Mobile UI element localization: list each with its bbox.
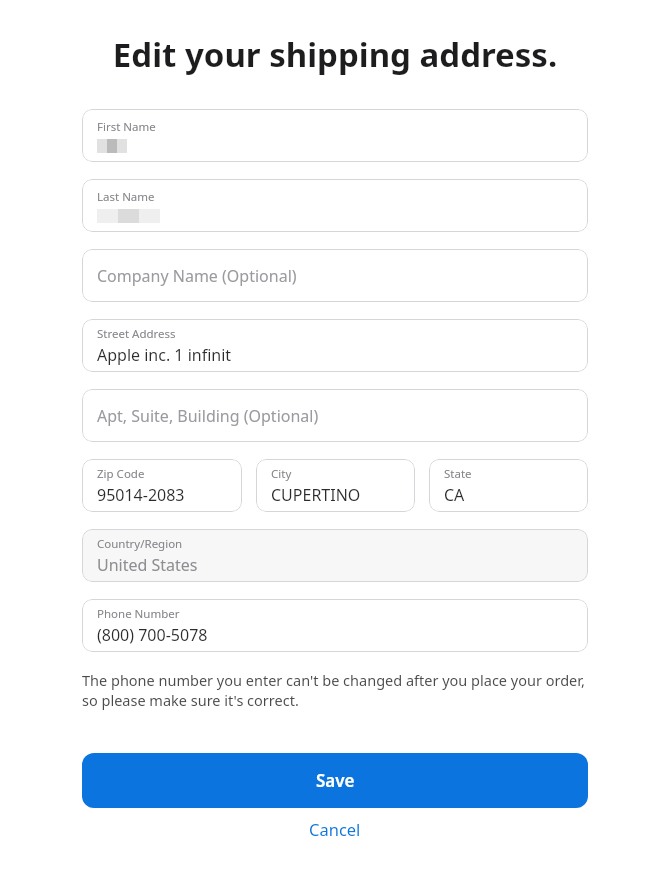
- staticText: Zip Code: [97, 466, 145, 482]
- staticText: Street Address: [97, 326, 176, 342]
- staticText: CUPERTINO: [271, 484, 361, 506]
- staticText: United States: [97, 554, 198, 576]
- staticText: Phone Number: [97, 606, 180, 622]
- button[interactable]: Cancel: [82, 808, 588, 850]
- button[interactable]: First Name: [82, 109, 588, 162]
- staticText: (800) 700-5078: [97, 624, 208, 646]
- staticText: First Name: [97, 119, 156, 135]
- staticText: Last Name: [97, 189, 155, 205]
- button[interactable]: Apt, Suite, Building (Optional): [82, 389, 588, 442]
- button[interactable]: Last Name: [82, 179, 588, 232]
- staticText: Country/Region: [97, 536, 183, 552]
- button[interactable]: Zip Code: [82, 459, 242, 512]
- button[interactable]: City: [256, 459, 415, 512]
- staticText: 95014-2083: [97, 484, 185, 506]
- staticText: Save: [316, 769, 355, 792]
- staticText: The phone number you enter can't be chan…: [82, 670, 588, 711]
- button[interactable]: Country/Region: [82, 529, 588, 582]
- button[interactable]: Street Address: [82, 319, 588, 372]
- staticText: City: [271, 466, 292, 482]
- staticText: State: [444, 466, 472, 482]
- staticText: Company Name (Optional): [97, 265, 297, 287]
- staticText: Apple inc. 1 infinit: [97, 344, 232, 366]
- button[interactable]: Save: [82, 753, 588, 808]
- staticText: Cancel: [309, 818, 361, 840]
- staticText: CA: [444, 484, 465, 506]
- button[interactable]: Phone Number: [82, 599, 588, 652]
- staticText: Apt, Suite, Building (Optional): [97, 405, 319, 427]
- button[interactable]: State: [429, 459, 588, 512]
- button[interactable]: Company Name (Optional): [82, 249, 588, 302]
- staticText: Edit your shipping address.: [16, 32, 654, 77]
